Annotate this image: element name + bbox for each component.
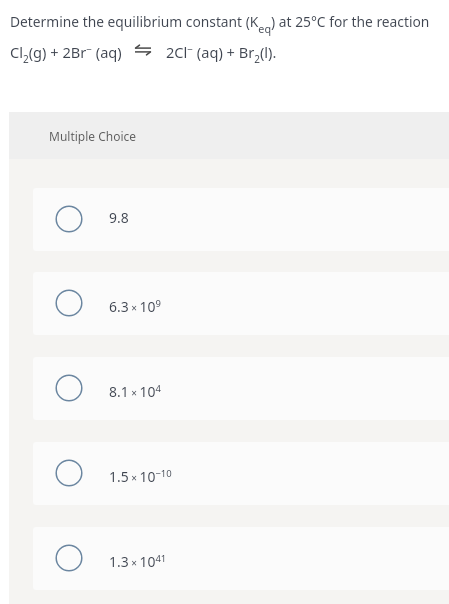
staticText: Multiple Choice <box>49 128 137 144</box>
staticText: 1.5 × 10−10 <box>109 467 172 486</box>
staticText: 1.3 × 1041 <box>109 552 167 571</box>
staticText: 9.8 <box>109 208 129 227</box>
staticText: 2Cl− (aq) + Br2(l). <box>166 42 277 66</box>
other: equilibrium arrow <box>135 44 151 56</box>
staticText: 6.3 × 109 <box>109 297 161 316</box>
staticText: Determine the equilibrium constant (Keq)… <box>10 12 430 36</box>
button[interactable]: 1.3 times 10 to the 41 <box>33 527 449 590</box>
button[interactable]: 8.1 times 10 to the 4 <box>33 357 449 420</box>
button[interactable]: 6.3 times 10 to the 9 <box>33 272 449 335</box>
staticText: 8.1 × 104 <box>109 382 161 401</box>
button[interactable]: 9.8 <box>33 188 449 251</box>
button[interactable]: 1.5 times 10 to the minus 10 <box>33 442 449 505</box>
staticText: Cl2(g) + 2Br− (aq) <box>10 42 122 66</box>
